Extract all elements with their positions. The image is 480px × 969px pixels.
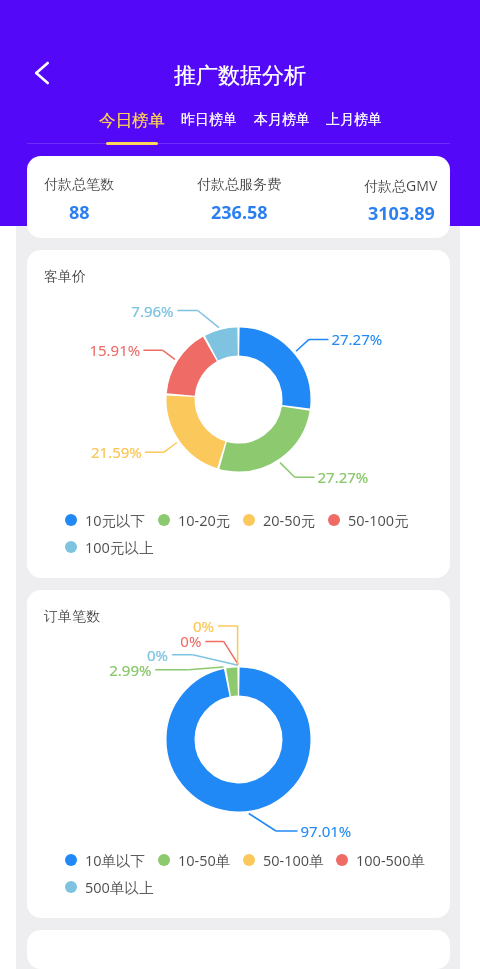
staticText: 推广数据分析 [174,62,306,90]
staticText: 50-100单 [263,850,324,870]
staticText: 100-500单 [356,850,425,870]
staticText: 10元以下 [85,510,146,530]
staticText: 20-50元 [263,510,316,530]
button[interactable]: Back [22,53,62,93]
staticText: 昨日榜单 [181,111,237,129]
button[interactable]: 本月榜单 [254,102,310,138]
button[interactable]: 今日榜单 [99,102,165,138]
staticText: 付款总GMV [364,176,438,195]
staticText: 236.58 [211,200,268,225]
staticText: 3103.89 [368,201,435,226]
button[interactable]: 昨日榜单 [181,102,237,138]
staticText: 今日榜单 [99,110,165,131]
staticText: 10-20元 [178,510,231,530]
staticText: 500单以上 [85,877,154,897]
staticText: 10单以下 [85,850,146,870]
staticText: 100元以上 [85,537,154,557]
staticText: 50-100元 [348,510,409,530]
staticText: 本月榜单 [254,111,310,129]
staticText: 付款总笔数 [44,176,114,194]
staticText: 客单价 [44,268,86,286]
staticText: 付款总服务费 [197,176,281,194]
button[interactable]: 上月榜单 [326,102,382,138]
staticText: 88 [69,200,90,225]
staticText: 上月榜单 [326,111,382,129]
staticText: 订单笔数 [44,608,100,626]
staticText: 10-50单 [178,850,231,870]
